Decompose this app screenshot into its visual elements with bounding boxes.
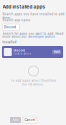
staticText: Search apps you have installed to add th… (2, 12, 64, 20)
staticText: Discord (4, 25, 16, 29)
staticText: the list above. (22, 83, 44, 86)
staticText: developer policy (28, 35, 55, 38)
staticText: Chat & voice (13, 52, 31, 55)
staticText: Add (12, 118, 18, 122)
staticText: Add (54, 50, 60, 54)
staticText: Cancel (24, 118, 35, 122)
staticText: Search for apps you want to add. Read (2, 32, 63, 35)
staticText: Discord (13, 48, 25, 52)
staticText: To add apps, select them from (10, 79, 55, 82)
staticText: more about our (2, 35, 27, 38)
staticText: Installed (2, 40, 16, 44)
staticText: Search app name (2, 18, 30, 22)
staticText: Add installed apps (2, 4, 45, 10)
